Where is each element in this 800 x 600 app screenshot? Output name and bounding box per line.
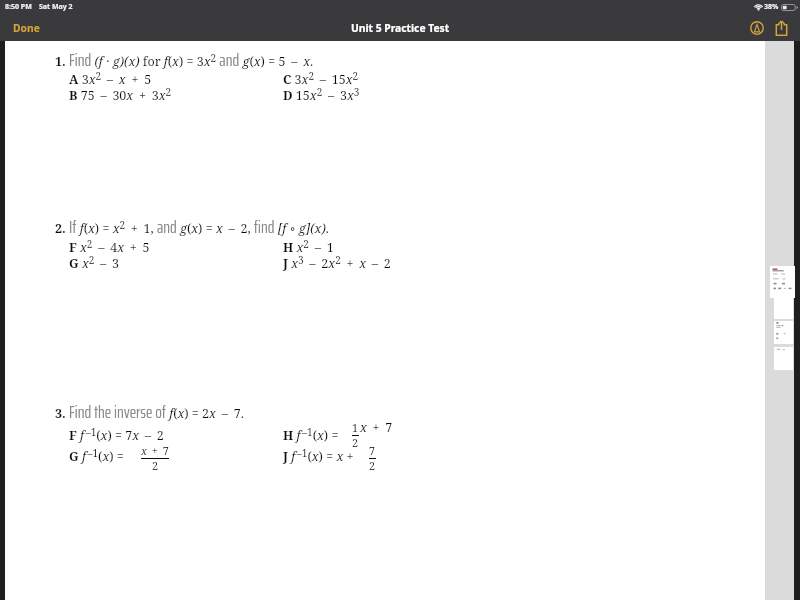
staticText: 1	[352, 421, 359, 435]
staticText: J x3 – 2x2 + x – 2	[283, 247, 391, 272]
staticText: 3. Find the inverse of f(x) = 2x – 7.	[55, 405, 244, 422]
staticText: Done	[13, 21, 40, 35]
staticText: 7	[369, 444, 376, 458]
button[interactable]: Page 3	[774, 321, 793, 344]
staticText: J f –1(x) = x +	[283, 440, 356, 465]
button[interactable]: Page 1	[770, 266, 795, 298]
staticText: 38%	[764, 2, 779, 12]
staticText: 2	[352, 436, 359, 450]
staticText: G f –1(x) =	[69, 440, 128, 465]
staticText: 1. Find (f · g)(x) for f(x) = 3x2 and g(…	[55, 45, 314, 71]
button[interactable]: Share	[769, 16, 793, 40]
button[interactable]: Done	[0, 15, 50, 41]
staticText: H x2 – 1	[283, 231, 334, 256]
staticText: x + 7	[360, 419, 393, 435]
staticText: 2	[369, 459, 376, 473]
staticText: 2	[152, 459, 159, 473]
staticText: A 3x2 – x + 5	[69, 63, 152, 88]
staticText: F f –1(x) = 7x – 2	[69, 419, 164, 444]
staticText: D 15x2 – 3x3	[283, 79, 360, 104]
staticText: H f –1(x) =	[283, 419, 342, 444]
staticText: C 3x2 – 15x2	[283, 63, 359, 88]
staticText: F x2 – 4x + 5	[69, 231, 150, 256]
button[interactable]: Page 4	[774, 347, 793, 370]
staticText: Unit 5 Practice Test	[351, 21, 450, 35]
staticText: B 75 – 30x + 3x2	[69, 79, 172, 104]
staticText: Sat May 2	[39, 2, 73, 12]
staticText: 2. If f(x) = x2 + 1, and g(x) = x – 2, f…	[55, 212, 329, 238]
staticText: 8:50 PM	[5, 2, 32, 12]
staticText: x + 7	[141, 444, 169, 458]
staticText: G x2 – 3	[69, 247, 120, 272]
button[interactable]: Markup	[745, 16, 769, 40]
